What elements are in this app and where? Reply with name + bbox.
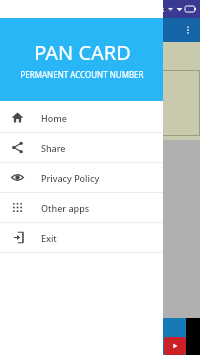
staticText: Share (41, 142, 66, 154)
button[interactable]: Privacy Policy (0, 163, 163, 192)
button[interactable]: Share (0, 133, 163, 162)
staticText: 4G (157, 6, 165, 13)
staticText: PAN CARD (34, 39, 131, 66)
staticText: Technology, Trust & Reach (15, 59, 52, 63)
button[interactable]: More options (180, 22, 196, 38)
button[interactable]: Exit (0, 223, 163, 252)
button[interactable]: YouTube (164, 337, 186, 355)
button[interactable]: Other apps (0, 193, 163, 222)
staticText: Exit (41, 232, 57, 244)
button[interactable]: Home (0, 103, 163, 132)
staticText: Other apps (41, 202, 90, 214)
staticText: Privacy Policy (41, 172, 100, 184)
staticText: PERMANENT ACCOUNT NUMBER (20, 69, 144, 80)
staticText: NSDL (15, 44, 46, 59)
staticText: Home (41, 112, 67, 124)
